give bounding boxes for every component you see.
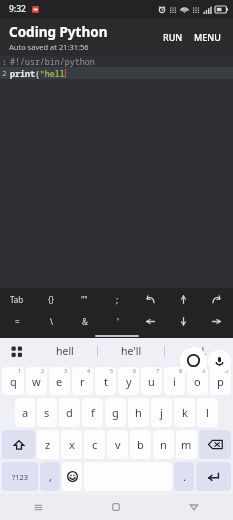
button[interactable]: MENU [189, 24, 226, 50]
button[interactable]: z [37, 430, 59, 459]
button[interactable]: Home [77, 494, 155, 520]
button[interactable]: a [15, 398, 35, 427]
button[interactable]: {} [34, 288, 68, 310]
staticText: \ [50, 316, 53, 327]
button[interactable]: \ [34, 310, 68, 333]
staticText: c [92, 437, 98, 452]
button[interactable]: Tab [0, 288, 34, 310]
staticText: hell [56, 344, 74, 358]
staticText: y [126, 374, 132, 389]
button[interactable]: Enter [196, 462, 231, 491]
staticText: Tab [10, 294, 24, 305]
staticText: hel. [189, 344, 207, 358]
button[interactable]: left [134, 310, 167, 333]
button[interactable]: t [95, 367, 116, 395]
button[interactable]: p [210, 367, 231, 395]
button[interactable]: up [167, 288, 200, 310]
button[interactable]: r [72, 367, 93, 395]
staticText: Coding Python [9, 23, 108, 41]
button[interactable]: hell [32, 338, 97, 364]
staticText: 9:32 [9, 3, 26, 15]
staticText: m [181, 437, 192, 452]
button[interactable]: . [174, 462, 194, 491]
staticText: r [80, 374, 85, 389]
staticText: a [22, 405, 29, 420]
button[interactable]: hel. [165, 338, 231, 364]
staticText: q [10, 374, 17, 389]
staticText: = [15, 316, 20, 327]
staticText: 7 [156, 367, 160, 374]
button[interactable]: "" [68, 288, 101, 310]
button[interactable]: j [151, 398, 172, 427]
button[interactable]: n [153, 430, 174, 459]
button[interactable]: x [61, 430, 82, 459]
button[interactable]: w [26, 367, 47, 395]
staticText: w [32, 374, 41, 389]
button[interactable]: ?123 [2, 462, 38, 491]
staticText: p [217, 374, 224, 389]
button[interactable]: s [37, 398, 57, 427]
button[interactable]: redo [200, 288, 233, 310]
staticText: , [49, 469, 52, 484]
staticText: 2 [41, 367, 45, 374]
staticText: b [137, 437, 144, 452]
staticText: 3 [64, 367, 68, 374]
button[interactable]: = [0, 310, 34, 333]
button[interactable]: c [84, 430, 105, 459]
button[interactable]: h [128, 398, 149, 427]
staticText: 5 [110, 367, 114, 374]
button[interactable]: & [68, 310, 101, 333]
button[interactable]: Shift [2, 430, 35, 459]
staticText: print("hell [10, 68, 65, 79]
staticText: s [44, 405, 50, 420]
staticText: g [112, 405, 119, 420]
staticText: 9 [202, 367, 206, 374]
button[interactable]: y [118, 367, 139, 395]
button[interactable]: Backspace [199, 430, 231, 459]
button[interactable]: v [107, 430, 128, 459]
button[interactable]: f [82, 398, 103, 427]
button[interactable]: k [174, 398, 195, 427]
button[interactable]: l [197, 398, 218, 427]
staticText: "" [81, 294, 88, 305]
staticText: he'll [121, 344, 142, 358]
button[interactable]: Assistant [180, 347, 207, 374]
staticText: i [173, 374, 176, 389]
staticText: v [115, 437, 121, 452]
staticText: u [148, 374, 155, 389]
button[interactable]: d [59, 398, 80, 427]
staticText: h [135, 405, 142, 420]
button[interactable]: Voice input [208, 350, 231, 373]
button[interactable]: Back [155, 494, 233, 520]
staticText: o [194, 374, 201, 389]
button[interactable]: More options [0, 338, 32, 364]
staticText: 1 [18, 367, 22, 374]
button[interactable]: he'll [98, 338, 164, 364]
button[interactable]: b [130, 430, 151, 459]
button[interactable]: undo [134, 288, 167, 310]
button[interactable]: Emoji [62, 462, 82, 491]
button[interactable]: g [105, 398, 126, 427]
button[interactable]: RUN [157, 24, 189, 50]
staticText: z [45, 437, 51, 452]
button[interactable]: Recent apps [0, 494, 77, 520]
button[interactable]: ; [101, 288, 134, 310]
staticText: ?123 [12, 472, 29, 482]
staticText: 1 [2, 57, 7, 67]
staticText: f [91, 405, 95, 420]
staticText: n [160, 437, 167, 452]
button[interactable]: , [40, 462, 60, 491]
button[interactable]: down [167, 310, 200, 333]
button[interactable]: e [49, 367, 70, 395]
staticText: d [66, 405, 73, 420]
button[interactable]: right [200, 310, 233, 333]
staticText: ; [116, 294, 119, 305]
button[interactable]: i [164, 367, 185, 395]
button[interactable]: u [141, 367, 162, 395]
button[interactable]: ' [101, 310, 134, 333]
button[interactable]: q [2, 367, 24, 395]
staticText: RUN [163, 31, 183, 43]
button[interactable]: m [176, 430, 197, 459]
button[interactable]: o [187, 367, 208, 395]
